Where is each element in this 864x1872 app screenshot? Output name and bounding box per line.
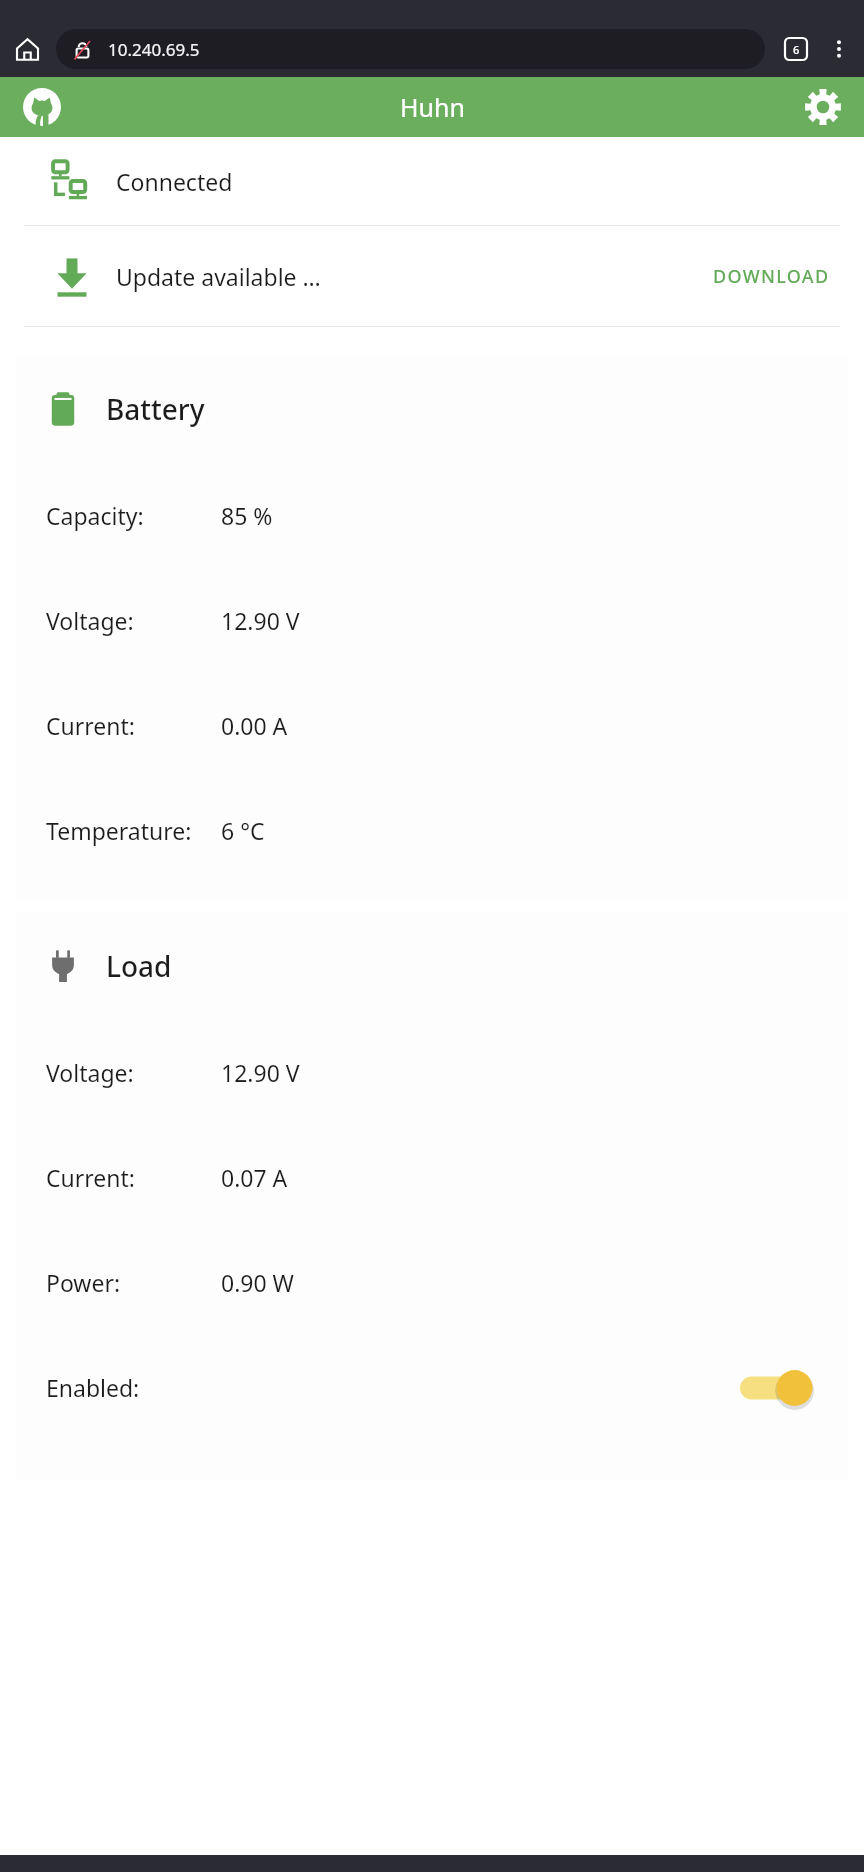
button[interactable]: More options xyxy=(818,28,860,70)
staticText: 85 % xyxy=(221,500,273,531)
staticText: 12.90 V xyxy=(221,1057,300,1088)
staticText: 0.00 A xyxy=(221,710,288,741)
staticText: Power: xyxy=(46,1267,121,1298)
staticText: Current: xyxy=(46,1162,135,1193)
staticText: Connected xyxy=(116,166,233,197)
staticText: 6 xyxy=(793,42,800,57)
button[interactable]: Switch tabs, 6 open xyxy=(774,27,818,71)
staticText: 0.90 W xyxy=(221,1267,295,1298)
button[interactable]: 10.240.69.5 xyxy=(56,29,765,69)
staticText: 10.240.69.5 xyxy=(108,38,200,61)
staticText: Temperature: xyxy=(46,815,192,846)
button[interactable]: Connected xyxy=(0,137,864,225)
button[interactable]: GitHub project xyxy=(14,79,70,135)
staticText: Capacity: xyxy=(46,500,144,531)
button[interactable]: DOWNLOAD xyxy=(703,254,840,299)
staticText: Battery xyxy=(106,390,205,428)
button[interactable]: Settings xyxy=(795,79,851,135)
staticText: Voltage: xyxy=(46,605,134,636)
button[interactable]: Update available … xyxy=(0,226,864,326)
staticText: 6 °C xyxy=(221,815,265,846)
button[interactable]: Home xyxy=(4,26,50,72)
staticText: Load xyxy=(106,947,172,985)
staticText: Huhn xyxy=(400,90,465,124)
staticText: 0.07 A xyxy=(221,1162,288,1193)
staticText: 12.90 V xyxy=(221,605,300,636)
button[interactable]: Load enabled, on xyxy=(740,1362,822,1414)
staticText: Enabled: xyxy=(46,1372,140,1403)
staticText: Voltage: xyxy=(46,1057,134,1088)
staticText: Update available … xyxy=(116,261,321,292)
staticText: Current: xyxy=(46,710,135,741)
staticText: DOWNLOAD xyxy=(713,264,830,289)
